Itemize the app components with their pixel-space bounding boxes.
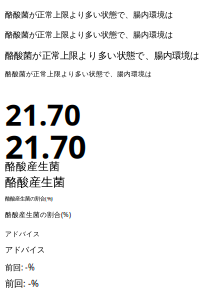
staticText: 酪酸産生菌 (5, 160, 60, 173)
staticText: 酪酸菌が正常上限より多い状態で、腸内環境は (5, 10, 173, 20)
staticText: 酪酸産生菌の割合(%) (5, 195, 53, 202)
staticText: 前回: -% (5, 262, 35, 273)
staticText: 酪酸菌が正常上限より多い状態で、腸内環境は (5, 50, 200, 61)
staticText: 前回: -% (5, 277, 39, 289)
staticText: 21.70 (5, 125, 86, 167)
staticText: アドバイス (5, 245, 45, 255)
staticText: 21.70 (5, 95, 81, 134)
staticText: 酪酸菌が正常上限より多い状態で、腸内環境は (5, 30, 173, 40)
staticText: 酪酸産生菌の割合(%) (5, 210, 71, 219)
staticText: 酪酸産生菌 (5, 175, 65, 190)
staticText: アドバイス (5, 230, 40, 238)
staticText: 酪酸菌が正常上限より多い状態で、腸内環境は (5, 70, 152, 78)
